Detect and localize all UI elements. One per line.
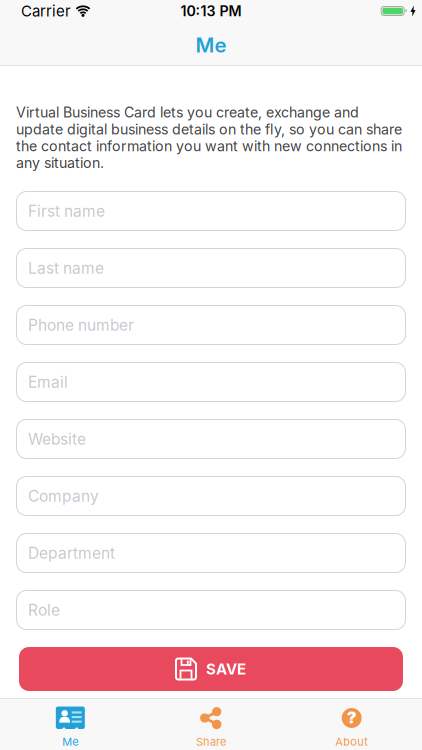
button[interactable]: Last name — [16, 248, 406, 288]
staticText: Phone number — [28, 316, 134, 334]
button[interactable]: First name — [16, 191, 406, 231]
button[interactable]: Company — [16, 476, 406, 516]
staticText: Email — [28, 373, 68, 391]
staticText: 10:13 PM — [180, 2, 241, 20]
staticText: Last name — [28, 259, 104, 277]
staticText: Department — [28, 544, 115, 562]
button[interactable]: Website — [16, 419, 406, 459]
staticText: Me — [195, 33, 226, 57]
button[interactable]: Email — [16, 362, 406, 402]
staticText: Share — [196, 735, 226, 748]
button[interactable]: Role — [16, 590, 406, 630]
button[interactable]: SAVE — [19, 647, 403, 691]
staticText: SAVE — [206, 660, 246, 678]
button[interactable]: Department — [16, 533, 406, 573]
staticText: ? — [347, 707, 357, 727]
button[interactable]: ? — [281, 699, 422, 748]
staticText: update digital business details on the f… — [16, 121, 402, 138]
staticText: Role — [28, 601, 60, 619]
staticText: Virtual Business Card lets you create, e… — [16, 104, 359, 121]
button[interactable]: Me — [0, 699, 141, 748]
button[interactable]: Share — [141, 699, 281, 748]
staticText: About — [335, 735, 368, 748]
staticText: Company — [28, 487, 99, 505]
staticText: the contact information you want with ne… — [16, 138, 402, 154]
staticText: First name — [28, 202, 105, 220]
staticText: Website — [28, 430, 86, 448]
staticText: any situation. — [16, 154, 104, 171]
staticText: Carrier — [21, 2, 71, 20]
staticText: Me — [62, 735, 78, 748]
button[interactable]: Phone number — [16, 305, 406, 345]
